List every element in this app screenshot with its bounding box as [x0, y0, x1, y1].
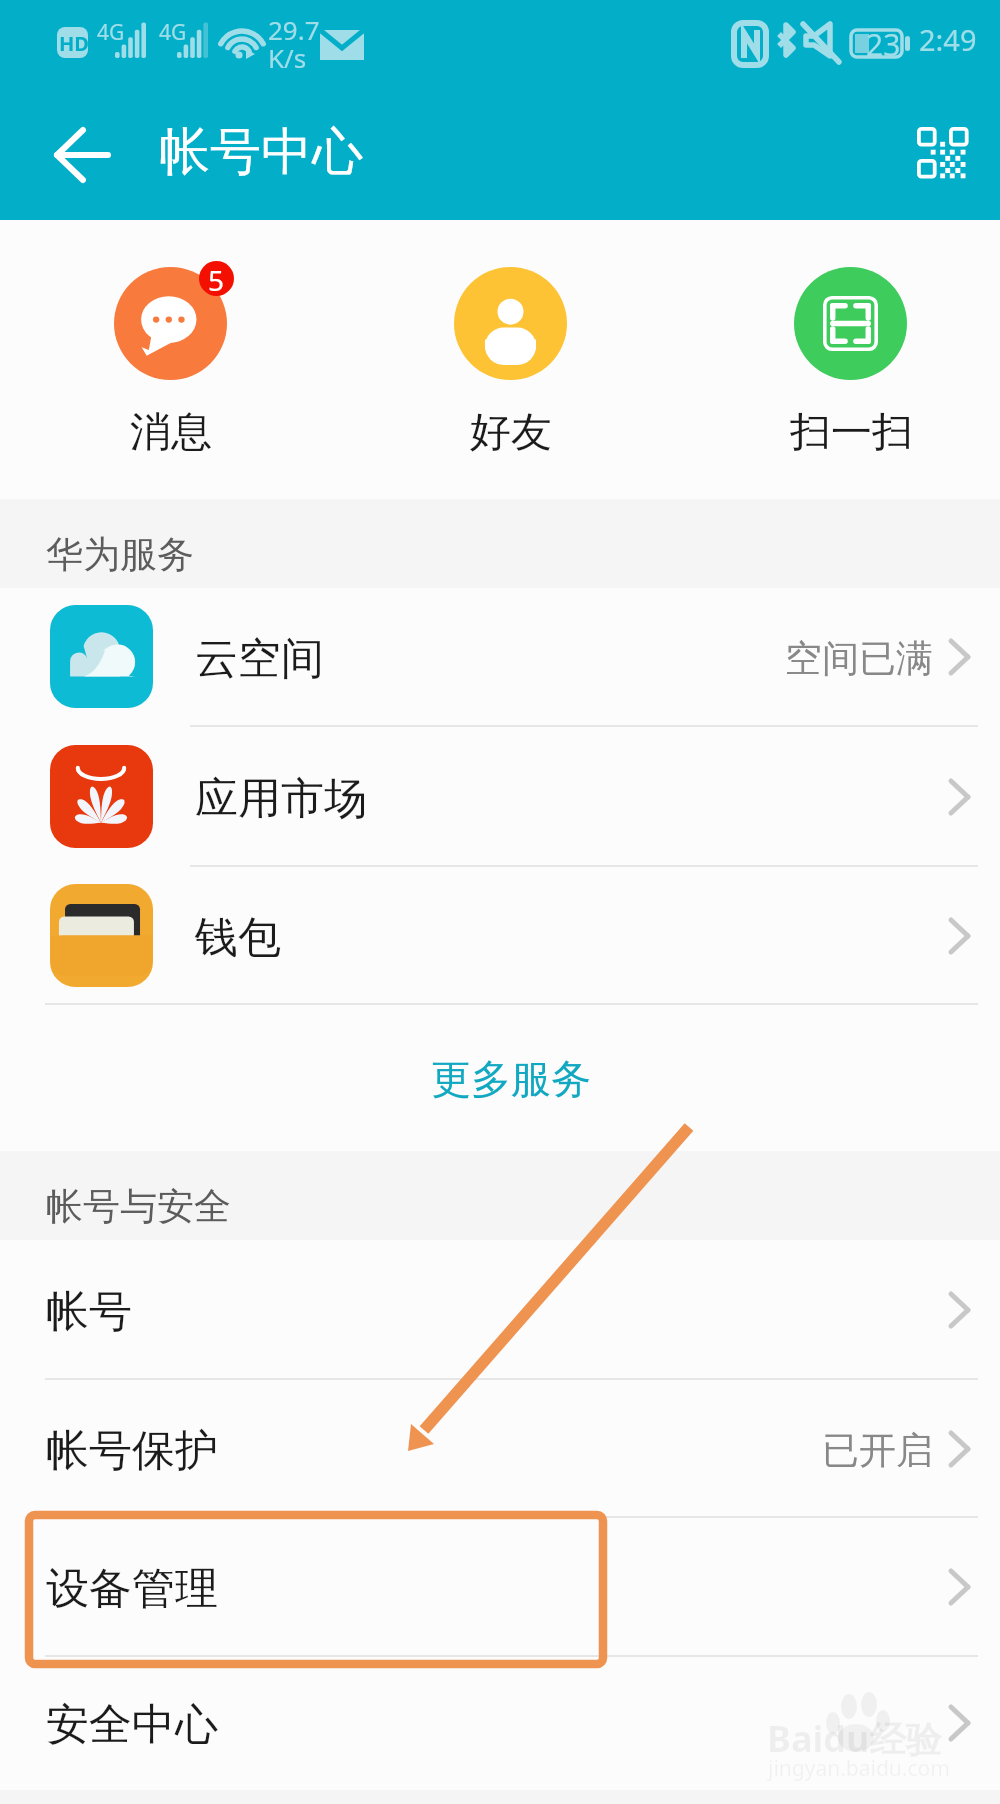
staticText: 钱包 — [195, 911, 281, 965]
staticText: K/s — [268, 40, 307, 75]
staticText: 设备管理 — [46, 1562, 218, 1616]
staticText: 更多服务 — [431, 1054, 591, 1104]
staticText: 帐号与安全 — [46, 1183, 231, 1230]
button[interactable]: 帐号 — [0, 1240, 1000, 1380]
staticText: 消息 — [130, 407, 212, 459]
staticText: Baidu经验 — [767, 1714, 942, 1763]
staticText: jingyan.baidu.com — [768, 1754, 950, 1783]
button[interactable]: 安全中心 — [0, 1657, 1000, 1790]
staticText: 5 — [208, 261, 225, 296]
staticText: 空间已满 — [785, 635, 933, 682]
staticText: 29.7 — [268, 12, 320, 47]
button[interactable]: 好友 — [401, 240, 621, 459]
button[interactable]: 帐号保护 — [0, 1380, 1000, 1518]
staticText: 帐号保护 — [46, 1424, 218, 1478]
staticText: 云空间 — [195, 632, 324, 686]
staticText: 好友 — [470, 407, 552, 459]
button[interactable]: 更多服务 — [0, 1005, 1000, 1151]
button[interactable]: 应用市场 — [0, 727, 1000, 867]
button[interactable]: Scan QR code — [905, 115, 979, 189]
staticText: 已开启 — [822, 1427, 933, 1474]
staticText: 安全中心 — [46, 1698, 218, 1752]
staticText: 帐号 — [46, 1285, 132, 1339]
button[interactable]: 云空间 — [0, 588, 1000, 727]
staticText: 帐号中心 — [159, 120, 363, 184]
staticText: 华为服务 — [46, 531, 194, 578]
staticText: 应用市场 — [195, 772, 367, 826]
button[interactable]: 扫一扫 — [741, 240, 961, 459]
staticText: 4G — [159, 18, 187, 47]
button[interactable]: 钱包 — [0, 867, 1000, 1005]
staticText: 扫一扫 — [790, 407, 913, 459]
button[interactable]: Back — [32, 110, 120, 198]
staticText: HD — [59, 30, 89, 57]
button[interactable]: 5 — [61, 240, 281, 459]
staticText: 2:49 — [919, 20, 977, 59]
button[interactable]: 设备管理 — [0, 1518, 1000, 1657]
staticText: 23 — [866, 24, 901, 65]
staticText: 4G — [97, 18, 125, 47]
